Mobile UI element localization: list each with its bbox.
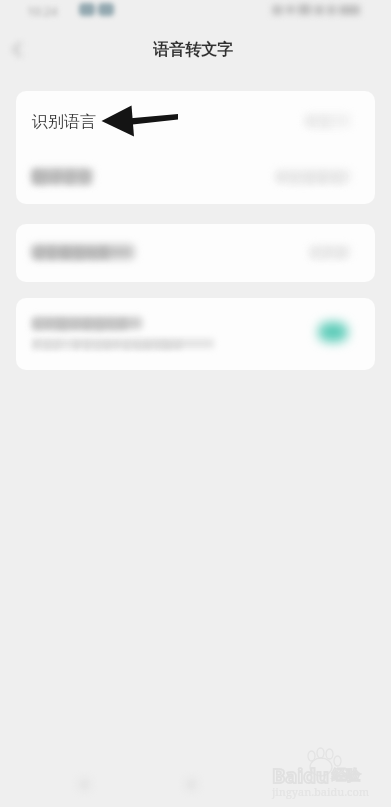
staticText: 实时翻译播报结果 — [32, 317, 128, 332]
button[interactable]: 实时翻译播报结果 — [16, 298, 375, 370]
button[interactable]: Back — [1, 33, 33, 65]
staticText: Baidu — [272, 762, 329, 789]
staticText: 开启后，录音过程中自动播报翻译 — [32, 339, 182, 352]
staticText: 经验 — [332, 767, 360, 785]
button[interactable]: Toggle — [310, 317, 356, 347]
staticText: jingyan.baidu.com — [272, 784, 370, 799]
button[interactable]: 翻译语言 — [16, 148, 375, 204]
staticText: 语音播报结果 — [32, 245, 110, 261]
staticText: 10:24 — [27, 3, 58, 19]
staticText: 语音转文字 — [153, 40, 233, 60]
staticText: 中文(普通话) — [276, 170, 345, 186]
staticText: 识别语言 — [32, 112, 96, 132]
button[interactable]: 语音播报结果 — [16, 224, 375, 282]
button[interactable]: 识别语言 — [16, 91, 375, 148]
staticText: 已开启 — [310, 246, 346, 261]
staticText: 翻译语言 — [32, 169, 92, 188]
